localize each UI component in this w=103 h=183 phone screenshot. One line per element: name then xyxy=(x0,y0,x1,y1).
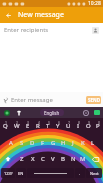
button[interactable]: L xyxy=(88,135,98,151)
button[interactable]: 123? xyxy=(1,168,15,178)
button[interactable]: Space xyxy=(27,168,74,178)
staticText: O xyxy=(86,122,91,130)
button[interactable]: Next xyxy=(86,168,102,178)
staticText: T xyxy=(46,122,50,130)
staticText: X xyxy=(31,155,35,163)
button[interactable]: S xyxy=(16,135,27,151)
staticText: G xyxy=(51,139,56,147)
button[interactable]: Choose contacts xyxy=(90,25,100,35)
button[interactable]: V xyxy=(48,151,58,167)
staticText: I xyxy=(77,122,80,130)
staticText: U xyxy=(66,122,71,130)
button[interactable]: G xyxy=(48,135,58,151)
staticText: N xyxy=(71,155,76,163)
button[interactable]: English xyxy=(40,109,64,116)
staticText: 5 xyxy=(48,120,51,125)
staticText: 1 xyxy=(5,120,8,125)
staticText: English xyxy=(44,110,60,116)
staticText: V xyxy=(51,155,55,163)
staticText: 4 xyxy=(38,120,41,125)
staticText: D xyxy=(30,139,35,147)
button[interactable]: X xyxy=(27,151,38,167)
button[interactable]: E xyxy=(22,118,33,135)
staticText: New message xyxy=(18,10,64,20)
staticText: 8 xyxy=(78,120,81,125)
button[interactable]: Q xyxy=(0,118,11,135)
button[interactable]: SEND xyxy=(86,96,101,104)
staticText: Enter message xyxy=(11,96,53,104)
button[interactable]: Theme xyxy=(2,108,11,117)
staticText: F xyxy=(41,139,45,147)
staticText: L xyxy=(91,139,95,147)
staticText: SEND xyxy=(88,97,100,103)
staticText: C xyxy=(41,155,45,163)
button[interactable]: I xyxy=(73,118,83,135)
button[interactable]: P xyxy=(93,118,103,135)
staticText: M xyxy=(80,155,86,163)
button[interactable]: J xyxy=(68,135,78,151)
staticText: Z xyxy=(20,155,24,163)
staticText: S xyxy=(20,139,24,147)
staticText: 123? xyxy=(4,171,13,176)
staticText: K xyxy=(81,139,85,147)
button[interactable]: EN xyxy=(16,168,26,178)
staticText: Next xyxy=(90,171,99,176)
button[interactable]: Backspace xyxy=(88,151,103,167)
button[interactable]: Settings xyxy=(81,108,90,117)
button[interactable]: C xyxy=(38,151,48,167)
staticText: 0 xyxy=(98,120,101,125)
staticText: E xyxy=(26,122,30,130)
staticText: 6 xyxy=(58,120,61,125)
button[interactable]: O xyxy=(83,118,93,135)
staticText: . xyxy=(79,171,81,176)
staticText: P xyxy=(96,122,100,130)
button[interactable]: Shift xyxy=(0,151,16,167)
button[interactable]: . xyxy=(75,168,85,178)
button[interactable]: W xyxy=(11,118,22,135)
staticText: 2 xyxy=(16,120,19,125)
button[interactable]: Z xyxy=(16,151,27,167)
button[interactable]: Attach xyxy=(1,95,11,105)
staticText: 3 xyxy=(27,120,30,125)
staticText: 7 xyxy=(68,120,71,125)
button[interactable]: F xyxy=(38,135,48,151)
staticText: Y xyxy=(56,122,60,130)
staticText: H xyxy=(61,139,66,147)
button[interactable]: K xyxy=(78,135,88,151)
button[interactable]: N xyxy=(68,151,78,167)
button[interactable]: R xyxy=(33,118,43,135)
button[interactable]: Back xyxy=(0,7,16,23)
staticText: 9 xyxy=(88,120,91,125)
button[interactable]: T xyxy=(43,118,53,135)
staticText: Enter recipients xyxy=(4,26,49,34)
button[interactable]: Hide keyboard xyxy=(92,108,101,117)
button[interactable]: Y xyxy=(53,118,63,135)
button[interactable]: Stickers xyxy=(14,108,23,117)
staticText: W xyxy=(14,122,20,130)
button[interactable]: H xyxy=(58,135,68,151)
staticText: J xyxy=(72,139,74,147)
button[interactable]: M xyxy=(78,151,88,167)
button[interactable]: A xyxy=(5,135,16,151)
button[interactable]: U xyxy=(63,118,73,135)
button[interactable]: B xyxy=(58,151,68,167)
staticText: Q xyxy=(3,122,8,130)
staticText: R xyxy=(36,122,40,130)
staticText: B xyxy=(61,155,65,163)
staticText: A xyxy=(9,139,13,147)
button[interactable]: D xyxy=(27,135,38,151)
staticText: EN xyxy=(18,171,24,176)
staticText: 10:28 xyxy=(88,0,101,7)
